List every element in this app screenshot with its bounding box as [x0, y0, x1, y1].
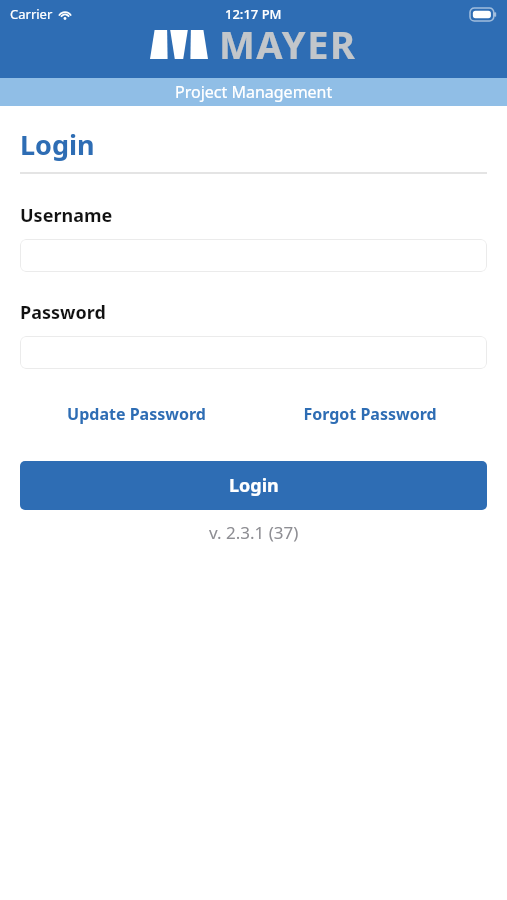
button[interactable]: Forgot Password [253, 399, 487, 429]
staticText: Carrier [10, 5, 53, 23]
button[interactable]: Update Password [20, 399, 253, 429]
staticText: Forgot Password [303, 403, 437, 425]
other: Mayer logo [150, 30, 208, 59]
button[interactable]: Password field [20, 336, 487, 369]
button[interactable]: Login [20, 461, 487, 510]
staticText: Username [20, 203, 113, 228]
staticText: Login [229, 473, 279, 498]
staticText: 12:17 PM [225, 5, 282, 23]
staticText: Password [20, 300, 106, 325]
staticText: Project Management [175, 81, 333, 103]
staticText: Update Password [67, 403, 206, 425]
staticText: v. 2.3.1 (37) [209, 521, 299, 544]
staticText: Login [20, 126, 95, 163]
button[interactable]: Username field [20, 239, 487, 272]
staticText: MAYER [219, 18, 357, 70]
